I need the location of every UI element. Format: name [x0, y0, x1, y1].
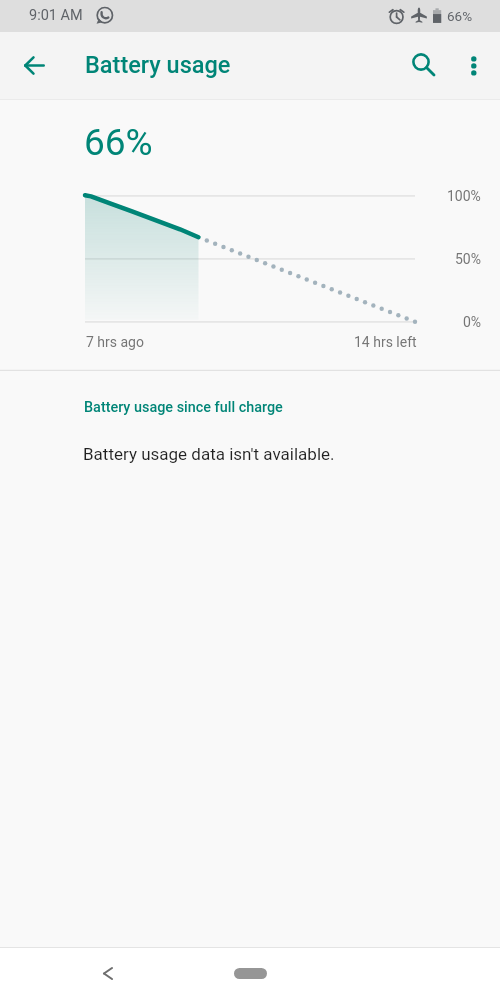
staticText: 66% — [447, 8, 473, 24]
staticText: Battery usage data isn't available. — [83, 444, 335, 464]
staticText: 100% — [447, 188, 481, 204]
staticText: 7 hrs ago — [86, 334, 144, 350]
staticText: Battery usage — [85, 51, 231, 79]
staticText: Battery usage since full charge — [84, 399, 283, 416]
button[interactable]: Back — [88, 953, 128, 993]
staticText: 9:01 AM — [29, 7, 83, 24]
button[interactable]: Home — [234, 968, 267, 979]
staticText: 66% — [84, 121, 153, 164]
staticText: 50% — [455, 251, 481, 267]
staticText: 14 hrs left — [354, 334, 417, 350]
button[interactable]: Navigate up — [6, 37, 62, 93]
button[interactable]: More options — [446, 37, 500, 93]
staticText: 0% — [463, 314, 482, 330]
button[interactable]: Search — [396, 37, 452, 93]
